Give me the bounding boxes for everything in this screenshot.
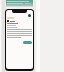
button[interactable] [23, 41, 32, 44]
button[interactable]: Profile [28, 14, 31, 17]
